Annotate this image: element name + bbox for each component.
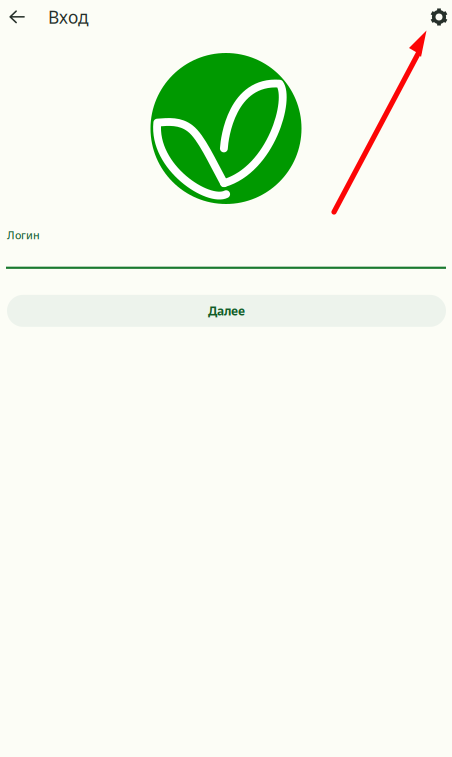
staticText: Вход bbox=[48, 5, 89, 28]
button[interactable]: Settings bbox=[426, 1, 452, 33]
staticText: Далее bbox=[208, 303, 245, 319]
button[interactable]: Back bbox=[1, 1, 32, 33]
staticText: Логин bbox=[7, 228, 40, 242]
button[interactable]: Вход bbox=[32, 1, 97, 33]
button[interactable]: Далее bbox=[7, 295, 446, 327]
